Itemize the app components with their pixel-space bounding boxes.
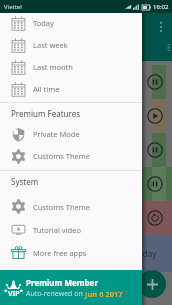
- staticText: VIP: [8, 289, 20, 299]
- staticText: Premium Member: [26, 277, 98, 288]
- button[interactable]: [0, 99, 172, 133]
- staticText: Jun 6 2017: [85, 289, 123, 299]
- staticText: Auto-renewed on: [26, 289, 85, 299]
- staticText: ERA: [167, 42, 172, 53]
- staticText: Last month: [33, 62, 73, 72]
- button[interactable]: Last week: [0, 34, 142, 56]
- button[interactable]: [0, 65, 172, 99]
- staticText: All time: [33, 84, 60, 94]
- button[interactable]: [0, 133, 172, 167]
- button[interactable]: Customs Theme: [0, 145, 142, 167]
- button[interactable]: All time: [0, 78, 142, 100]
- button[interactable]: [0, 201, 172, 235]
- staticText: System: [11, 176, 39, 187]
- staticText: Tutorial video: [33, 225, 81, 235]
- staticText: Today: [33, 18, 54, 28]
- button[interactable]: Tutorial video: [0, 218, 142, 241]
- staticText: Customs Theme: [33, 202, 91, 212]
- staticText: 16:02: [153, 3, 169, 11]
- button[interactable]: Last month: [0, 56, 142, 78]
- button[interactable]: Today: [0, 12, 142, 34]
- button[interactable]: More free apps: [0, 241, 142, 264]
- staticText: Last week: [33, 40, 68, 50]
- staticText: Customs Theme: [33, 151, 91, 161]
- button[interactable]: VIP: [0, 270, 142, 305]
- staticText: Viettel: [4, 3, 22, 11]
- button[interactable]: [0, 167, 172, 201]
- staticText: Today: [134, 248, 157, 259]
- button[interactable]: Add recording: [138, 270, 166, 298]
- button[interactable]: More options: [154, 20, 168, 34]
- staticText: Private Mode: [33, 129, 80, 139]
- staticText: More free apps: [33, 248, 87, 258]
- button[interactable]: Private Mode: [0, 123, 142, 145]
- button[interactable]: Customs Theme: [0, 195, 142, 218]
- staticText: Premium Features: [11, 108, 81, 119]
